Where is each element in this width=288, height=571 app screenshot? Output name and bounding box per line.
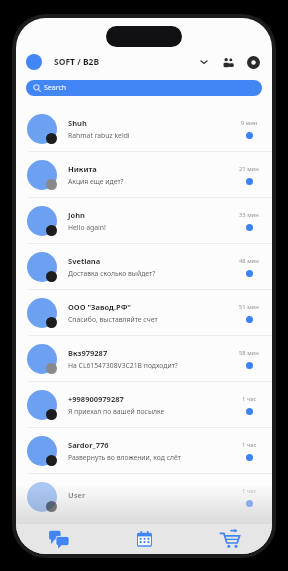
button[interactable]: Shuh bbox=[16, 106, 272, 151]
staticText: На CL61547308V3C21B подходит? bbox=[68, 361, 178, 370]
button[interactable]: Contacts bbox=[219, 53, 237, 71]
button[interactable]: Search bbox=[26, 80, 262, 96]
staticText: 51 мин bbox=[239, 303, 259, 311]
button[interactable]: Svetlana bbox=[16, 244, 272, 289]
button[interactable]: +998900979287 bbox=[16, 382, 272, 427]
staticText: Search bbox=[44, 83, 67, 93]
staticText: Акция еще идет? bbox=[68, 177, 124, 186]
staticText: Svetlana bbox=[68, 256, 101, 266]
staticText: 48 мин bbox=[239, 257, 259, 265]
staticText: Вкз979287 bbox=[68, 348, 108, 358]
staticText: Спасибо, выставляйте счет bbox=[68, 315, 158, 324]
button[interactable]: Cart bbox=[187, 524, 272, 554]
button[interactable]: Profile bbox=[26, 54, 42, 70]
button[interactable]: SOFT / B2B bbox=[54, 56, 211, 68]
button[interactable]: ООО "Завод.РФ" bbox=[16, 290, 272, 335]
staticText: +998900979287 bbox=[68, 394, 124, 404]
button[interactable]: Никита bbox=[16, 152, 272, 197]
staticText: Hello again! bbox=[68, 223, 106, 232]
staticText: 1 час bbox=[242, 441, 257, 449]
staticText: Я приехал по вашей посылке bbox=[68, 407, 165, 416]
staticText: SOFT / B2B bbox=[54, 56, 100, 68]
staticText: 21 мин bbox=[239, 165, 259, 173]
button[interactable]: Calendar bbox=[102, 524, 187, 554]
button[interactable]: Settings bbox=[244, 53, 262, 71]
button[interactable]: Chats bbox=[16, 524, 102, 554]
staticText: 1 час bbox=[242, 395, 257, 403]
button[interactable]: Вкз979287 bbox=[16, 336, 272, 381]
staticText: 33 мин bbox=[239, 211, 259, 219]
staticText: 58 мин bbox=[239, 349, 259, 357]
staticText: 9 мин bbox=[241, 119, 258, 127]
button[interactable]: Sardor_776 bbox=[16, 428, 272, 473]
staticText: Rahmat rabuz keldi bbox=[68, 131, 130, 140]
staticText: Развернуть во вложении, код слёт bbox=[68, 453, 181, 462]
staticText: 1 час bbox=[242, 487, 257, 495]
button[interactable]: User bbox=[16, 474, 272, 519]
staticText: Sardor_776 bbox=[68, 440, 109, 450]
staticText: Shuh bbox=[68, 118, 87, 128]
staticText: Доставка сколько выйдет? bbox=[68, 269, 156, 278]
button[interactable]: John bbox=[16, 198, 272, 243]
staticText: John bbox=[68, 210, 85, 220]
staticText: User bbox=[68, 490, 86, 500]
staticText: Никита bbox=[68, 164, 97, 174]
staticText: ООО "Завод.РФ" bbox=[68, 302, 131, 312]
